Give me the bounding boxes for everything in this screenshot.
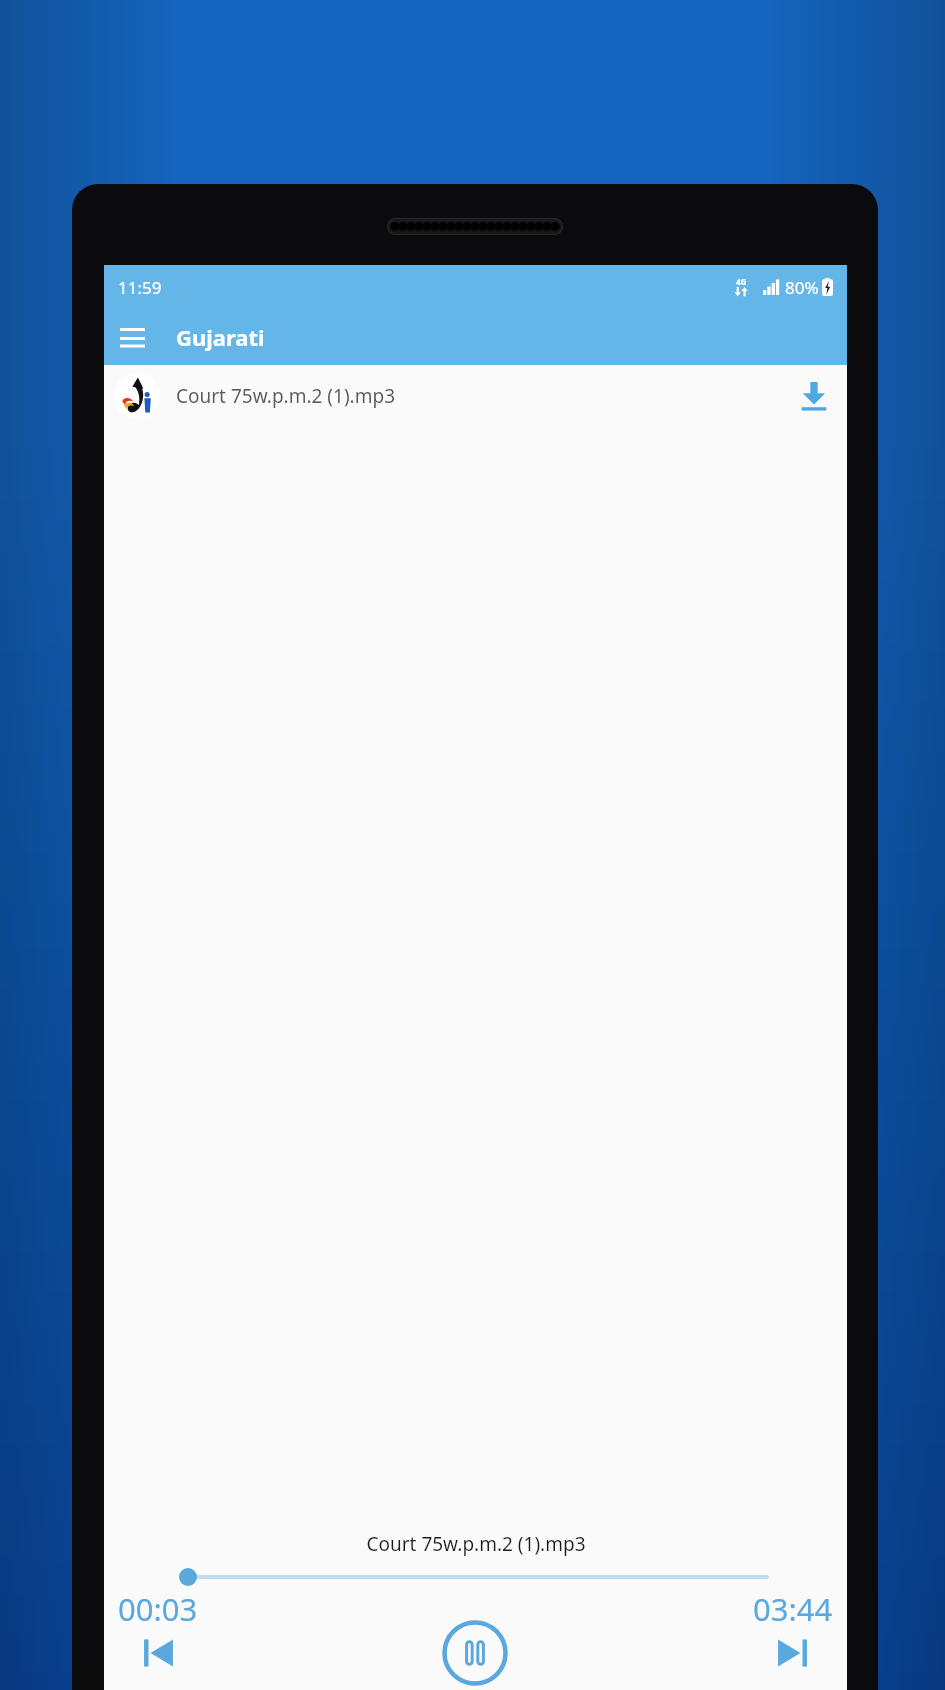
staticText: 11:59 xyxy=(118,276,162,299)
staticText: 03:44 xyxy=(753,1588,833,1630)
button[interactable]: Pause xyxy=(442,1620,508,1686)
button[interactable]: Next track xyxy=(770,1630,816,1676)
button[interactable]: Open navigation menu xyxy=(104,309,160,365)
staticText: Court 75w.p.m.2 (1).mp3 xyxy=(176,383,791,409)
button[interactable] xyxy=(180,1566,771,1588)
button[interactable]: Previous track xyxy=(135,1630,181,1676)
staticText: 4G xyxy=(736,276,747,287)
staticText: Gujarati xyxy=(176,322,265,352)
button[interactable]: Court 75w.p.m.2 (1).mp3 xyxy=(104,365,847,427)
staticText: Court 75w.p.m.2 (1).mp3 xyxy=(366,1531,586,1557)
button[interactable]: Download xyxy=(791,373,837,419)
staticText: 80% xyxy=(785,276,819,299)
staticText: 00:03 xyxy=(118,1588,198,1630)
